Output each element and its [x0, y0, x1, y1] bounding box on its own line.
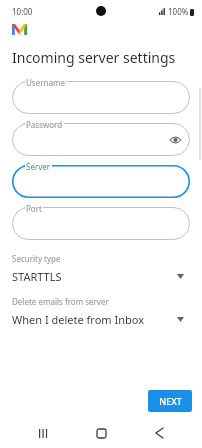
staticText: Server	[26, 161, 51, 172]
button[interactable]: NEXT	[148, 390, 192, 412]
button[interactable]: Back	[144, 418, 174, 448]
staticText: Port	[26, 203, 42, 214]
staticText: Password	[26, 119, 63, 130]
staticText: NEXT	[159, 395, 182, 407]
staticText: STARTTLS	[12, 269, 177, 284]
button[interactable]: Show password	[168, 133, 182, 147]
staticText: 100%	[168, 6, 189, 17]
button[interactable]: Username	[12, 81, 190, 114]
staticText: Incoming server settings	[12, 48, 176, 67]
staticText: Security type	[12, 253, 61, 264]
staticText: 10:00	[12, 6, 33, 17]
button[interactable]: Home	[86, 418, 116, 448]
staticText: Username	[26, 77, 65, 88]
staticText: Delete emails from server	[12, 296, 109, 307]
button[interactable]: Password	[12, 123, 190, 156]
button[interactable]: Server	[12, 165, 190, 198]
button[interactable]: Recent apps	[28, 418, 58, 448]
button[interactable]: Delete emails from server	[12, 296, 190, 327]
staticText: When I delete from Inbox	[12, 312, 177, 327]
button[interactable]: Port	[12, 207, 190, 240]
button[interactable]: Security type	[12, 253, 190, 284]
